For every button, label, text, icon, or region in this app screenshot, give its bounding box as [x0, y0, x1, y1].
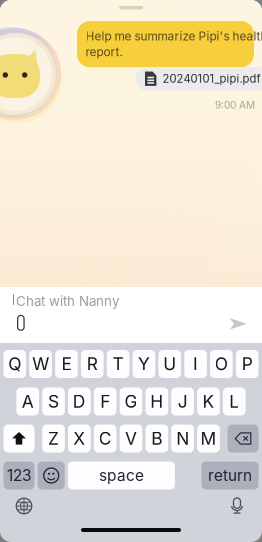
staticText: C: [99, 428, 112, 449]
button[interactable]: D: [68, 387, 91, 415]
button[interactable]: B: [145, 424, 168, 452]
staticText: Help me summarize Pipi's health: [85, 29, 262, 43]
staticText: L: [229, 391, 239, 412]
staticText: H: [150, 391, 163, 412]
staticText: R: [87, 353, 98, 374]
button[interactable]: P: [236, 350, 258, 378]
staticText: Q: [8, 353, 21, 374]
button[interactable]: E: [55, 350, 78, 378]
staticText: I: [193, 353, 198, 374]
staticText: W: [32, 353, 49, 374]
button[interactable]: H: [145, 387, 168, 415]
button[interactable]: W: [29, 350, 52, 378]
staticText: return: [208, 466, 252, 485]
button[interactable]: Dictate: [224, 493, 250, 519]
staticText: A: [22, 391, 34, 412]
button[interactable]: N: [171, 424, 194, 452]
staticText: P: [242, 353, 253, 374]
button[interactable]: [3, 424, 34, 452]
button[interactable]: J: [171, 387, 194, 415]
button[interactable]: K: [197, 387, 220, 415]
button[interactable]: R: [81, 350, 104, 378]
button[interactable]: Attach file: [8, 310, 34, 336]
button[interactable]: A: [16, 387, 39, 415]
staticText: D: [73, 391, 86, 412]
button[interactable]: [38, 461, 65, 489]
button[interactable]: Q: [3, 350, 26, 378]
staticText: Y: [138, 353, 150, 374]
button[interactable]: Y: [133, 350, 155, 378]
button[interactable]: return: [201, 461, 258, 489]
staticText: Z: [48, 428, 59, 449]
staticText: F: [100, 391, 110, 412]
button[interactable]: [227, 424, 258, 452]
staticText: B: [151, 428, 162, 449]
staticText: J: [178, 391, 188, 412]
button[interactable]: M: [197, 424, 220, 452]
button[interactable]: Switch keyboard: [11, 493, 37, 519]
staticText: V: [125, 428, 137, 449]
staticText: O: [215, 353, 228, 374]
staticText: space: [99, 466, 144, 485]
staticText: G: [124, 391, 137, 412]
staticText: 123: [7, 466, 31, 485]
staticText: N: [176, 428, 189, 449]
button[interactable]: G: [120, 387, 142, 415]
staticText: X: [73, 428, 85, 449]
button[interactable]: F: [94, 387, 116, 415]
staticText: T: [113, 353, 124, 374]
button[interactable]: S: [42, 387, 65, 415]
staticText: report.: [85, 45, 122, 59]
button[interactable]: space: [68, 461, 175, 489]
button[interactable]: O: [210, 350, 233, 378]
staticText: 20240101_pipi.pdf: [163, 72, 261, 86]
button[interactable]: T: [107, 350, 129, 378]
staticText: E: [61, 353, 71, 374]
staticText: U: [163, 353, 176, 374]
button[interactable]: X: [68, 424, 91, 452]
button[interactable]: 20240101_pipi.pdf: [136, 67, 262, 91]
staticText: M: [200, 428, 216, 449]
button[interactable]: 123: [3, 461, 34, 489]
staticText: 9:00 AM: [215, 99, 255, 111]
staticText: K: [202, 391, 214, 412]
button[interactable]: I: [184, 350, 207, 378]
button[interactable]: Z: [42, 424, 65, 452]
button[interactable]: C: [94, 424, 116, 452]
button[interactable]: U: [158, 350, 181, 378]
button[interactable]: L: [223, 387, 246, 415]
button[interactable]: Send: [224, 311, 252, 337]
button[interactable]: V: [120, 424, 142, 452]
staticText: Chat with Nanny: [16, 293, 119, 309]
staticText: S: [48, 391, 59, 412]
